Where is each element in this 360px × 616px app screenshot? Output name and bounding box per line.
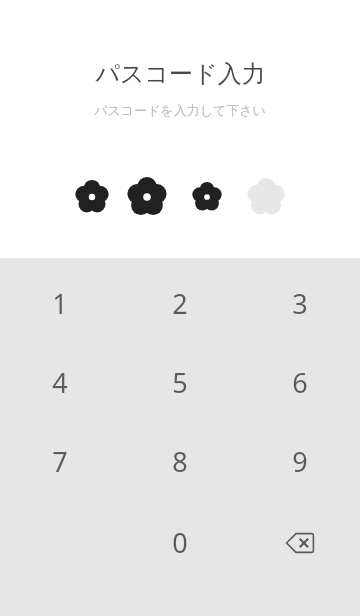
staticText: 8 bbox=[172, 443, 188, 480]
button[interactable]: Delete bbox=[240, 501, 360, 584]
button[interactable]: 8 bbox=[120, 422, 240, 501]
staticText: 9 bbox=[292, 443, 308, 480]
button[interactable]: 0 bbox=[120, 501, 240, 584]
button[interactable]: 1 bbox=[0, 264, 120, 343]
staticText: 4 bbox=[52, 364, 68, 401]
staticText: 5 bbox=[172, 364, 188, 401]
button[interactable]: 9 bbox=[240, 422, 360, 501]
staticText: 7 bbox=[52, 443, 68, 480]
button[interactable]: 4 bbox=[0, 343, 120, 422]
button[interactable]: 6 bbox=[240, 343, 360, 422]
staticText: 1 bbox=[52, 285, 68, 322]
staticText: パスコードを入力して下さい bbox=[94, 102, 266, 118]
staticText: 2 bbox=[172, 285, 188, 322]
button[interactable]: 5 bbox=[120, 343, 240, 422]
button[interactable]: 3 bbox=[240, 264, 360, 343]
staticText: パスコード入力 bbox=[95, 59, 266, 89]
staticText: 6 bbox=[292, 364, 308, 401]
button[interactable]: 7 bbox=[0, 422, 120, 501]
staticText: 0 bbox=[172, 524, 188, 561]
button[interactable]: 2 bbox=[120, 264, 240, 343]
staticText: 3 bbox=[292, 285, 308, 322]
